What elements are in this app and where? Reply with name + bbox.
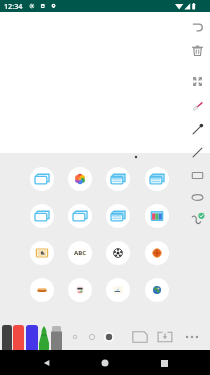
- button[interactable]: Sticker 7: [106, 204, 130, 228]
- button[interactable]: Sticker 12: [145, 241, 169, 265]
- button[interactable]: Stroke size: [67, 329, 83, 345]
- button[interactable]: Background: [129, 326, 151, 348]
- staticText: ABC: [74, 249, 86, 257]
- button[interactable]: Pen: [187, 119, 207, 139]
- button[interactable]: Colour: [2, 325, 12, 350]
- button[interactable]: Sticker 10: [68, 241, 92, 265]
- button[interactable]: Ellipse: [187, 187, 207, 207]
- button[interactable]: Delete: [187, 40, 207, 60]
- button[interactable]: Colour: [26, 325, 38, 350]
- button[interactable]: Freehand: [187, 209, 207, 229]
- button[interactable]: Sticker 11: [106, 241, 130, 265]
- button[interactable]: Sticker 1: [30, 167, 54, 191]
- button[interactable]: Sticker 16: [145, 278, 169, 302]
- button[interactable]: Sticker 9: [30, 241, 54, 265]
- button[interactable]: Sticker 2: [68, 167, 92, 191]
- button[interactable]: Sticker 8: [145, 204, 169, 228]
- button[interactable]: Save: [154, 326, 176, 348]
- button[interactable]: Sticker 3: [106, 167, 130, 191]
- button[interactable]: Rectangle: [187, 165, 207, 185]
- button[interactable]: Colour: [13, 325, 24, 350]
- staticText: 12:34: [4, 1, 23, 11]
- button[interactable]: Back: [35, 351, 59, 375]
- button[interactable]: Recents: [152, 351, 176, 375]
- button[interactable]: Undo: [187, 17, 207, 37]
- button[interactable]: More options: [181, 326, 203, 348]
- button[interactable]: Home: [93, 351, 117, 375]
- button[interactable]: Stroke size: [84, 329, 100, 345]
- button[interactable]: Sticker 6: [68, 204, 92, 228]
- button[interactable]: Line: [187, 142, 207, 162]
- button[interactable]: Sticker 15: [106, 278, 130, 302]
- button[interactable]: Sticker 4: [145, 167, 169, 191]
- button[interactable]: Highlighter: [187, 96, 207, 116]
- button[interactable]: Sticker 5: [30, 204, 54, 228]
- button[interactable]: Sticker 14: [68, 278, 92, 302]
- button[interactable]: Sticker 13: [30, 278, 54, 302]
- button[interactable]: Fit to screen: [187, 71, 207, 91]
- button[interactable]: Colour: [51, 326, 62, 350]
- button[interactable]: Stroke size: [101, 329, 117, 345]
- button[interactable]: Colour: [39, 326, 49, 350]
